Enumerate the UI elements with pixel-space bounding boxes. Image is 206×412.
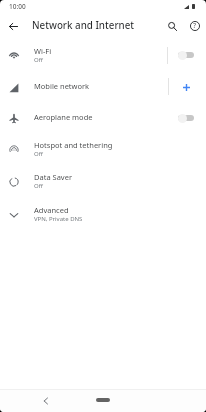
- staticText: Off: [34, 150, 43, 158]
- button[interactable]: Advanced: [0, 198, 206, 231]
- button[interactable]: Back: [40, 395, 52, 407]
- button[interactable]: Back: [4, 17, 22, 35]
- button[interactable]: Home: [96, 398, 110, 402]
- staticText: Advanced: [34, 205, 69, 215]
- button[interactable]: Toggle: [178, 50, 194, 60]
- button[interactable]: Mobile network: [0, 71, 206, 102]
- staticText: Aeroplane mode: [34, 112, 93, 122]
- staticText: Wi-Fi: [34, 46, 52, 56]
- staticText: ?: [193, 21, 197, 31]
- staticText: Network and Internet: [32, 19, 135, 32]
- staticText: VPN, Private DNS: [34, 215, 83, 223]
- staticText: Off: [34, 182, 43, 190]
- button[interactable]: Toggle: [178, 113, 194, 123]
- button[interactable]: Wi-Fi: [0, 39, 206, 71]
- button[interactable]: Search: [163, 17, 181, 35]
- button[interactable]: Data Saver: [0, 165, 206, 198]
- button[interactable]: Aeroplane mode: [0, 102, 206, 133]
- staticText: Off: [34, 56, 43, 64]
- staticText: Mobile network: [34, 81, 90, 91]
- button[interactable]: Add network: [179, 80, 193, 94]
- staticText: Hotspot and tethering: [34, 140, 113, 150]
- button[interactable]: Hotspot and tethering: [0, 133, 206, 165]
- button[interactable]: Help: [186, 17, 204, 35]
- staticText: 10:00: [9, 2, 26, 11]
- staticText: Data Saver: [34, 172, 73, 182]
